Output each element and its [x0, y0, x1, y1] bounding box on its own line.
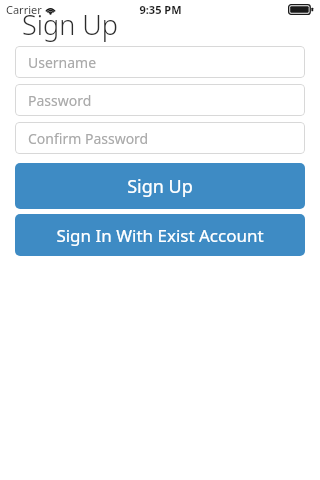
staticText: Carrier [6, 2, 42, 17]
button[interactable]: Password [15, 84, 305, 116]
staticText: Password [28, 91, 92, 110]
staticText: Sign In With Exist Account [56, 224, 264, 247]
staticText: Confirm Password [28, 129, 149, 148]
staticText: Sign Up [22, 6, 118, 43]
staticText: Username [28, 53, 97, 72]
staticText: Sign Up [127, 174, 193, 199]
button[interactable]: Sign In With Exist Account [15, 214, 305, 256]
staticText: 9:35 PM [139, 2, 182, 17]
button[interactable]: Sign Up [15, 163, 305, 209]
button[interactable]: Username [15, 46, 305, 78]
button[interactable]: Confirm Password [15, 122, 305, 154]
